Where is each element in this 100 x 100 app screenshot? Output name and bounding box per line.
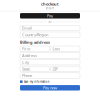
staticText: Country/Region (22, 32, 48, 37)
staticText: Pay (47, 13, 53, 18)
staticText: Secure (45, 6, 54, 10)
staticText: Save my information (24, 80, 50, 83)
button[interactable]: Save my information (20, 80, 80, 83)
staticText: City (22, 59, 29, 65)
staticText: Email (22, 25, 32, 31)
staticText: Last (53, 46, 60, 51)
staticText: Address (22, 53, 37, 58)
button[interactable]: Pay (20, 13, 80, 19)
staticText: Phone (22, 73, 32, 78)
staticText: Pay now (43, 85, 57, 90)
staticText: State (22, 66, 30, 71)
staticText: checkout (41, 1, 59, 6)
staticText: or (48, 20, 51, 24)
staticText: ZIP (53, 66, 58, 71)
staticText: First (22, 46, 30, 51)
button[interactable]: Pay now (20, 85, 80, 91)
staticText: Billing address (20, 39, 50, 45)
